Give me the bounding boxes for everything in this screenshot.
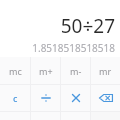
- button[interactable]: m-: [61, 57, 90, 84]
- button[interactable]: c: [0, 85, 30, 111]
- staticText: 1.8518518518518: [32, 41, 115, 55]
- button[interactable]: Backspace: [91, 85, 120, 111]
- button[interactable]: mc: [0, 57, 30, 84]
- staticText: m+: [39, 65, 53, 77]
- staticText: m-: [70, 65, 82, 77]
- staticText: mr: [99, 65, 112, 77]
- button[interactable]: mr: [91, 57, 120, 84]
- staticText: mc: [9, 65, 22, 77]
- button[interactable]: m+: [31, 57, 60, 84]
- staticText: 50÷27: [60, 13, 115, 39]
- button[interactable]: Divide: [31, 85, 60, 111]
- staticText: c: [13, 92, 18, 104]
- button[interactable]: Multiply: [61, 85, 90, 111]
